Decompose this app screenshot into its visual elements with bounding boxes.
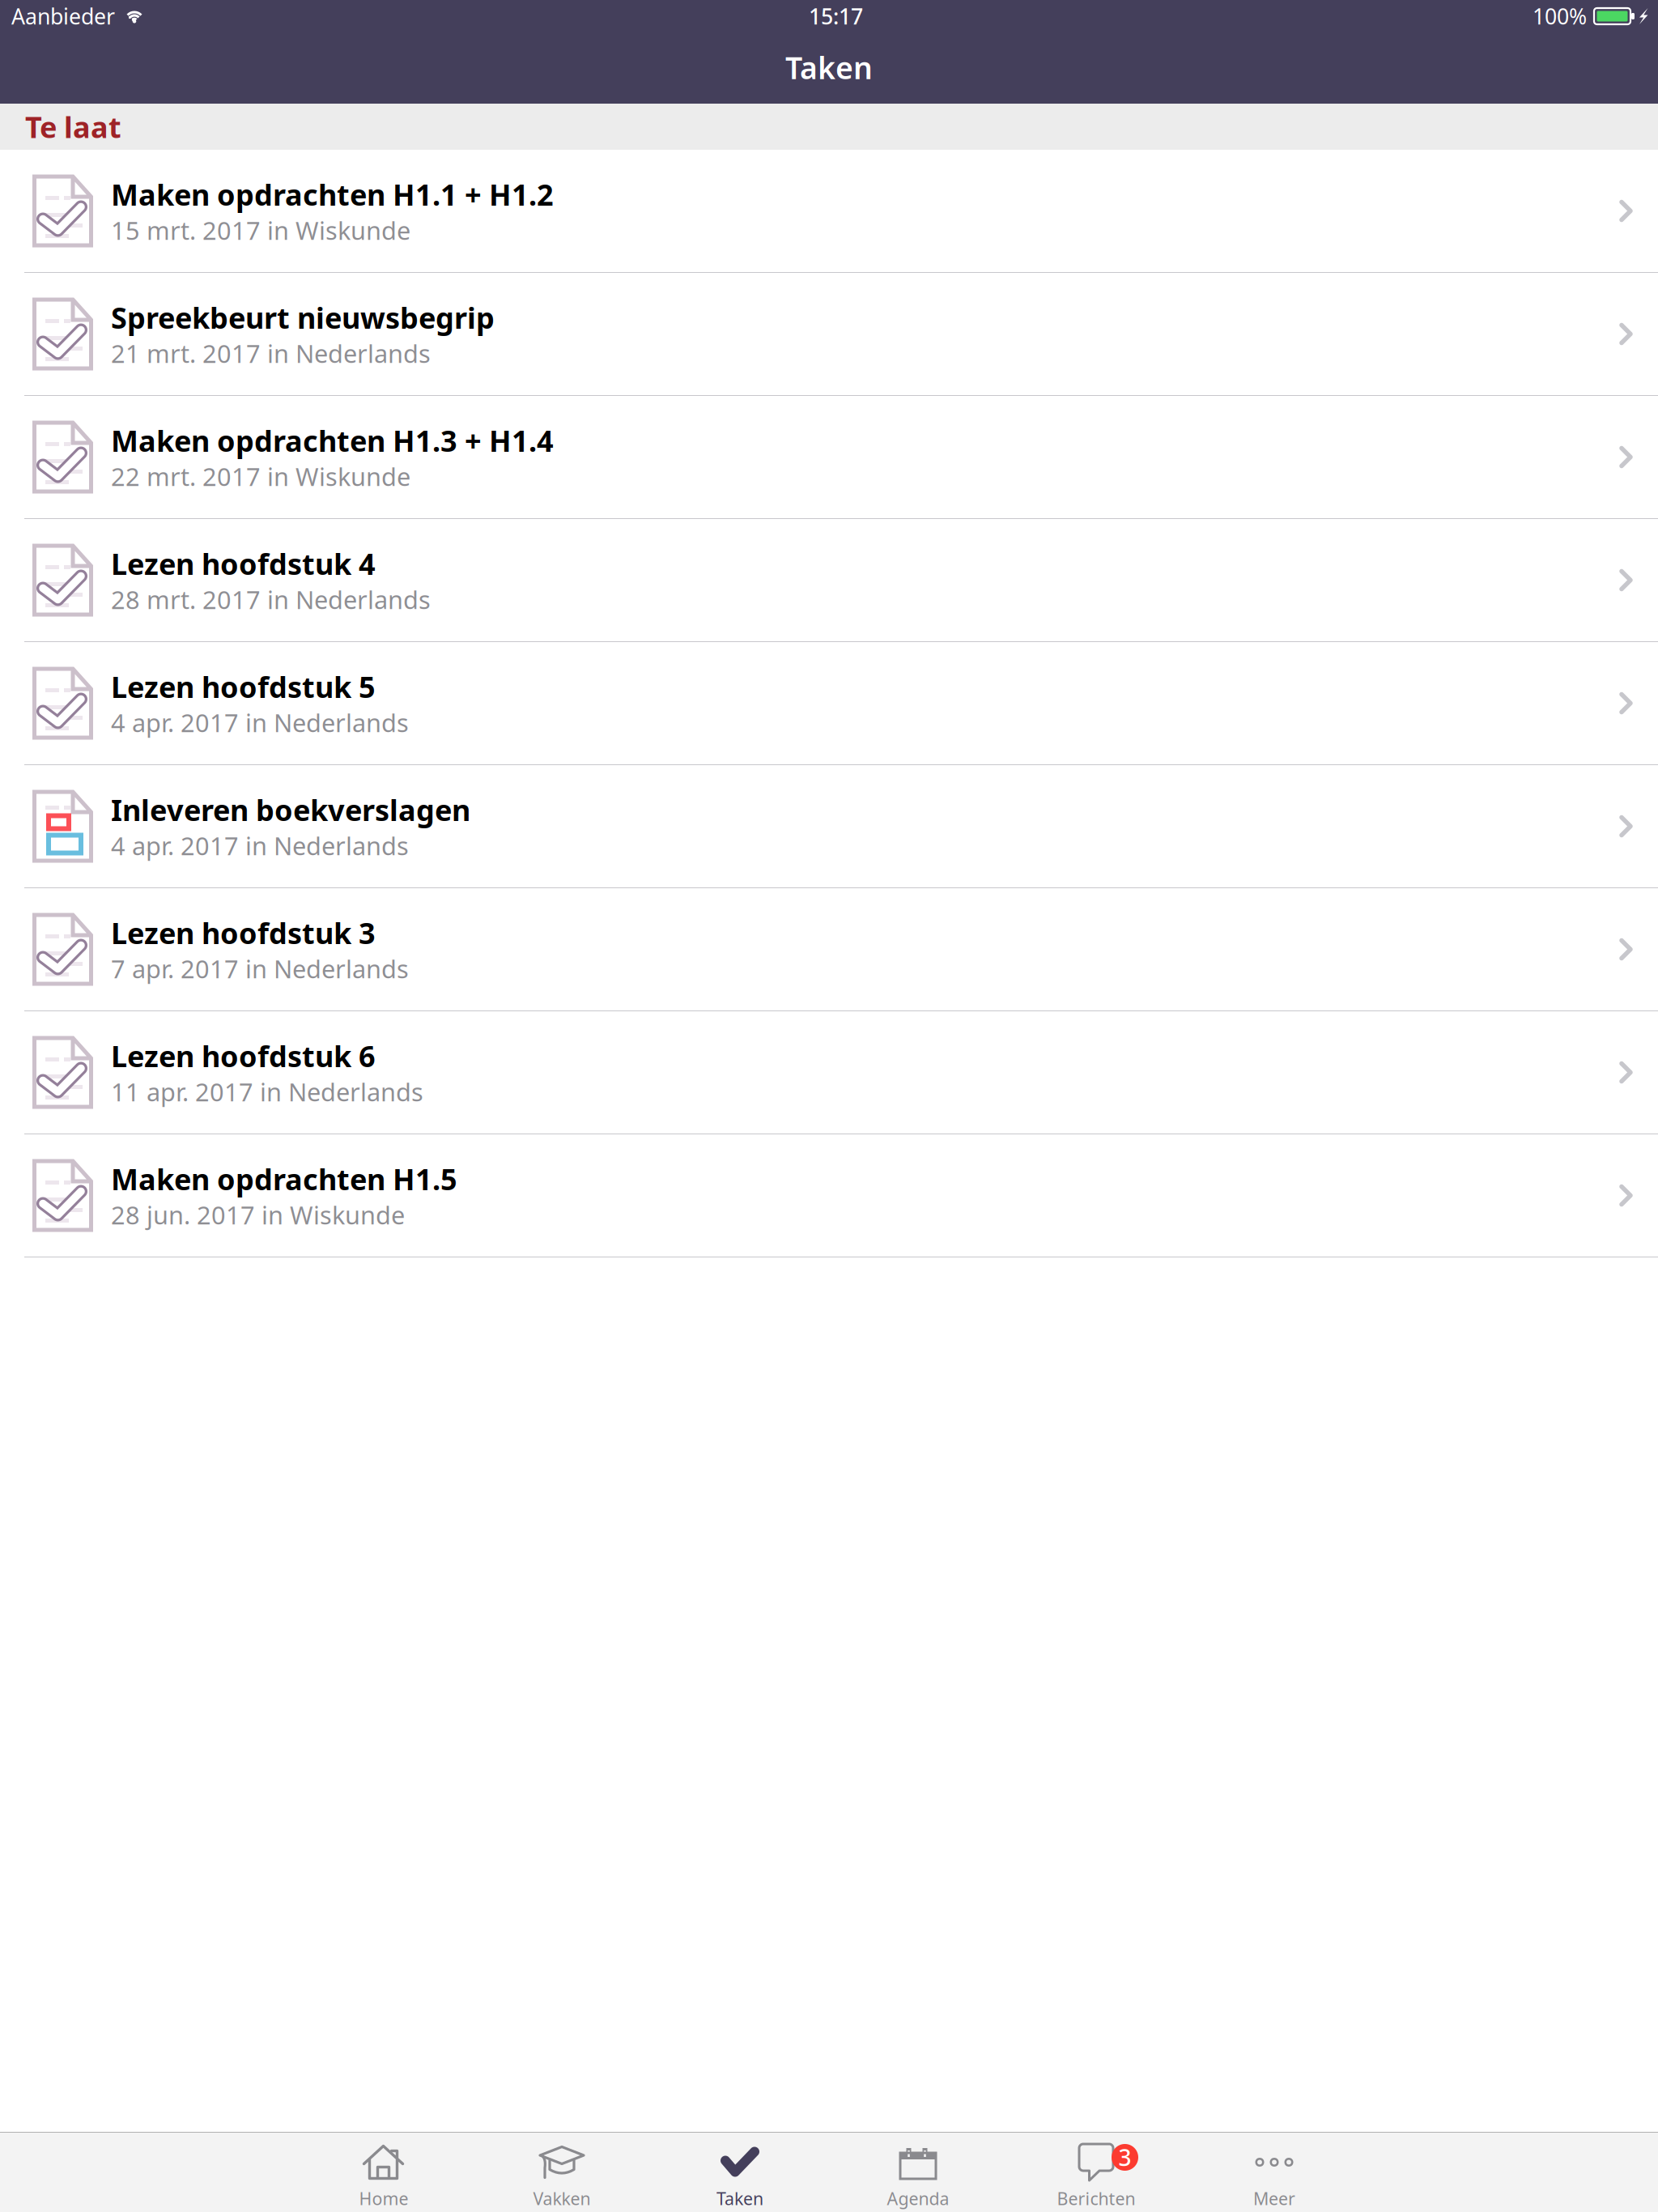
button[interactable]: Inleveren boekverslagen (0, 765, 1658, 888)
staticText: 15:17 (809, 2, 863, 31)
button[interactable]: Lezen hoofdstuk 4 (0, 519, 1658, 642)
staticText: Lezen hoofdstuk 6 (111, 1037, 376, 1075)
staticText: 4 apr. 2017 in Nederlands (111, 706, 409, 739)
staticText: 4 apr. 2017 in Nederlands (111, 829, 409, 862)
staticText: 28 mrt. 2017 in Nederlands (111, 583, 431, 616)
staticText: Taken (716, 2187, 763, 2210)
button[interactable]: Spreekbeurt nieuwsbegrip (0, 273, 1658, 396)
button[interactable]: Vakken (473, 2133, 651, 2212)
staticText: 3 (1118, 2142, 1131, 2172)
button[interactable]: Lezen hoofdstuk 6 (0, 1011, 1658, 1134)
button[interactable]: Maken opdrachten H1.1 + H1.2 (0, 150, 1658, 273)
staticText: Vakken (533, 2187, 591, 2210)
staticText: Taken (785, 47, 873, 87)
staticText: Te laat (25, 107, 121, 146)
staticText: Agenda (887, 2187, 949, 2210)
staticText: 7 apr. 2017 in Nederlands (111, 952, 409, 985)
staticText: Lezen hoofdstuk 5 (111, 667, 376, 706)
staticText: Lezen hoofdstuk 3 (111, 913, 376, 952)
button[interactable]: Maken opdrachten H1.5 (0, 1134, 1658, 1257)
staticText: 11 apr. 2017 in Nederlands (111, 1075, 423, 1108)
button[interactable]: 3 (1007, 2133, 1185, 2212)
button[interactable]: Lezen hoofdstuk 5 (0, 642, 1658, 765)
staticText: Lezen hoofdstuk 4 (111, 544, 376, 583)
staticText: Spreekbeurt nieuwsbegrip (111, 298, 495, 337)
staticText: Maken opdrachten H1.3 + H1.4 (111, 421, 554, 460)
staticText: Inleveren boekverslagen (111, 790, 470, 829)
staticText: Home (359, 2187, 408, 2210)
button[interactable]: Taken (651, 2133, 829, 2212)
staticText: Aanbieder (11, 2, 115, 31)
staticText: Maken opdrachten H1.5 (111, 1160, 457, 1198)
staticText: Berichten (1057, 2187, 1135, 2210)
button[interactable]: Meer (1185, 2133, 1363, 2212)
button[interactable]: Lezen hoofdstuk 3 (0, 888, 1658, 1011)
button[interactable]: Agenda (829, 2133, 1007, 2212)
staticText: 21 mrt. 2017 in Nederlands (111, 337, 431, 370)
staticText: 15 mrt. 2017 in Wiskunde (111, 214, 410, 247)
staticText: 28 jun. 2017 in Wiskunde (111, 1198, 405, 1231)
button[interactable]: Home (295, 2133, 473, 2212)
staticText: 22 mrt. 2017 in Wiskunde (111, 460, 410, 493)
staticText: 100% (1533, 2, 1587, 31)
staticText: Maken opdrachten H1.1 + H1.2 (111, 175, 554, 214)
button[interactable]: Maken opdrachten H1.3 + H1.4 (0, 396, 1658, 519)
staticText: Meer (1253, 2187, 1295, 2210)
